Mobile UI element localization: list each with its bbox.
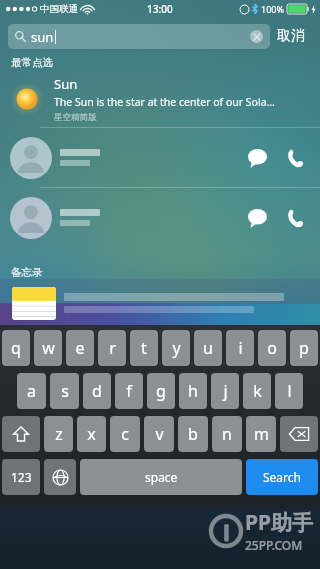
button[interactable]: l: [275, 373, 303, 409]
button[interactable]: Shift: [2, 416, 40, 452]
button[interactable]: e: [66, 330, 94, 366]
staticText: 中国联通: [40, 3, 78, 15]
button[interactable]: q: [2, 330, 30, 366]
button[interactable]: Call: [280, 143, 310, 173]
staticText: i: [238, 337, 243, 359]
button[interactable]: [0, 281, 320, 325]
staticText: t: [141, 337, 147, 359]
staticText: g: [156, 380, 166, 402]
button[interactable]: w: [34, 330, 62, 366]
button[interactable]: Clear search: [250, 30, 263, 43]
staticText: 星空精简版: [54, 112, 97, 123]
staticText: z: [55, 423, 63, 445]
button[interactable]: c: [110, 416, 140, 452]
staticText: Search: [263, 469, 301, 485]
button[interactable]: f: [115, 373, 143, 409]
button[interactable]: Change keyboard: [44, 459, 76, 495]
staticText: n: [222, 423, 232, 445]
staticText: h: [188, 380, 198, 402]
button[interactable]: u: [194, 330, 222, 366]
button[interactable]: Numbers: [2, 459, 40, 495]
button[interactable]: Send message: [0, 128, 320, 187]
button[interactable]: Call: [280, 203, 310, 233]
button[interactable]: Send message: [242, 143, 272, 173]
staticText: e: [75, 337, 85, 359]
staticText: s: [61, 380, 69, 402]
button[interactable]: Backspace: [280, 416, 318, 452]
staticText: sun: [31, 28, 54, 46]
staticText: 最常点选: [11, 56, 53, 69]
staticText: c: [121, 423, 129, 445]
button[interactable]: d: [83, 373, 111, 409]
staticText: j: [223, 380, 228, 402]
button[interactable]: p: [290, 330, 318, 366]
button[interactable]: m: [246, 416, 276, 452]
staticText: k: [253, 380, 262, 402]
button[interactable]: g: [147, 373, 175, 409]
staticText: q: [11, 337, 21, 359]
staticText: u: [203, 337, 213, 359]
staticText: 100%: [261, 3, 284, 15]
staticText: x: [87, 423, 96, 445]
staticText: v: [155, 423, 164, 445]
staticText: 取消: [277, 27, 305, 45]
staticText: 25PP.COM: [245, 537, 303, 553]
button[interactable]: t: [130, 330, 158, 366]
button[interactable]: n: [212, 416, 242, 452]
staticText: w: [42, 337, 55, 359]
staticText: b: [188, 423, 198, 445]
staticText: The Sun is the star at the center of our…: [54, 95, 275, 109]
button[interactable]: Send message: [242, 203, 272, 233]
staticText: 备忘录: [11, 266, 43, 279]
button[interactable]: o: [258, 330, 286, 366]
staticText: r: [109, 337, 116, 359]
staticText: o: [267, 337, 277, 359]
button[interactable]: i: [226, 330, 254, 366]
staticText: a: [27, 380, 36, 402]
button[interactable]: z: [44, 416, 73, 452]
button[interactable]: sun: [8, 24, 270, 49]
staticText: m: [254, 423, 269, 445]
button[interactable]: y: [162, 330, 190, 366]
button[interactable]: Sun: [0, 70, 320, 127]
button[interactable]: Send message: [0, 188, 320, 247]
staticText: p: [299, 337, 309, 359]
button[interactable]: 取消: [270, 23, 312, 49]
button[interactable]: s: [50, 373, 79, 409]
button[interactable]: k: [243, 373, 271, 409]
staticText: 13:00: [147, 2, 173, 16]
staticText: f: [126, 380, 132, 402]
staticText: space: [145, 469, 178, 485]
button[interactable]: Search: [246, 459, 318, 495]
button[interactable]: j: [211, 373, 239, 409]
staticText: 123: [11, 469, 32, 485]
staticText: y: [172, 337, 181, 359]
button[interactable]: v: [144, 416, 174, 452]
button[interactable]: space: [80, 459, 242, 495]
button[interactable]: b: [178, 416, 208, 452]
staticText: PP助手: [245, 508, 314, 537]
button[interactable]: a: [17, 373, 46, 409]
staticText: l: [287, 380, 292, 402]
button[interactable]: h: [179, 373, 207, 409]
button[interactable]: x: [77, 416, 106, 452]
button[interactable]: r: [98, 330, 126, 366]
staticText: d: [92, 380, 102, 402]
staticText: Sun: [54, 75, 78, 93]
